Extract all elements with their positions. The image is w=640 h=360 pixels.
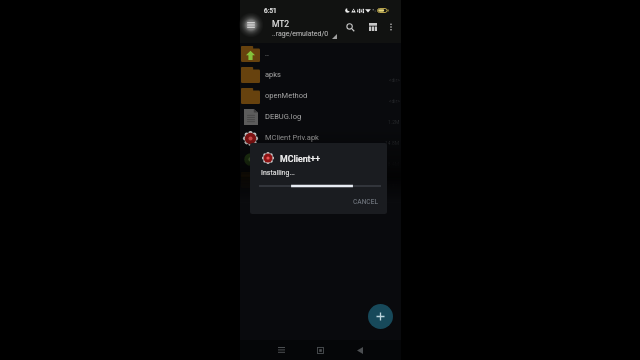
button[interactable]: .. [240,43,401,64]
staticText: ..rage/emulated/0 [272,30,329,38]
staticText: 1.2M [388,119,400,125]
staticText: 14.8M [385,140,400,146]
button[interactable]: MClient Priv.apk [240,127,401,148]
staticText: apks [265,70,360,79]
staticText: <dir> [389,98,400,104]
staticText: MClient++ [280,154,321,164]
button[interactable]: New [368,304,393,329]
staticText: MClient.apk [265,154,360,163]
button[interactable]: openMethod [240,85,401,106]
staticText: Installing... [261,169,295,177]
button[interactable]: apks [240,64,401,85]
staticText: MClient Priv.apk [265,133,360,142]
button[interactable]: Search [340,17,360,37]
button[interactable]: Change view [363,17,383,37]
staticText: DEBUG.log [265,112,360,121]
button[interactable]: Recent apps [267,340,295,360]
staticText: MT2 [272,19,290,29]
staticText: 6:51 [264,7,277,15]
button[interactable]: CANCEL [349,195,382,209]
staticText: 18.4M [385,161,400,167]
staticText: <dir> [389,77,400,83]
staticText: openMethod [265,91,360,100]
button[interactable]: Home [306,340,334,360]
button[interactable]: Navigation menu [239,13,263,37]
button[interactable]: More options [381,17,401,37]
button[interactable]: MClient.apk [240,148,401,169]
staticText: backups [265,175,360,184]
button[interactable]: Back [346,340,374,360]
staticText: CANCEL [353,198,378,206]
button[interactable]: backups [240,169,401,190]
button[interactable]: DEBUG.log [240,106,401,127]
